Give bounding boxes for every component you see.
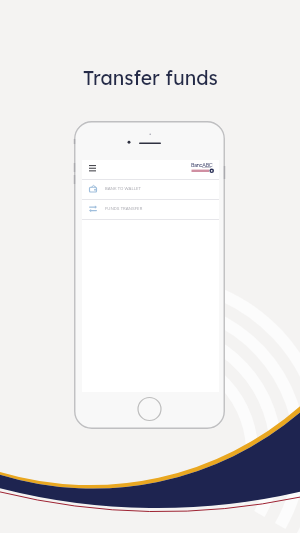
button[interactable]: FUNDS TRANSFER bbox=[82, 200, 219, 219]
staticText: BancABC bbox=[191, 162, 213, 168]
button[interactable]: BANK TO WALLET bbox=[82, 180, 219, 199]
button[interactable]: Open navigation menu bbox=[82, 160, 102, 179]
staticText: Transfer funds bbox=[83, 66, 218, 90]
staticText: FUNDS TRANSFER bbox=[105, 206, 143, 211]
staticText: BANK TO WALLET bbox=[105, 186, 141, 191]
